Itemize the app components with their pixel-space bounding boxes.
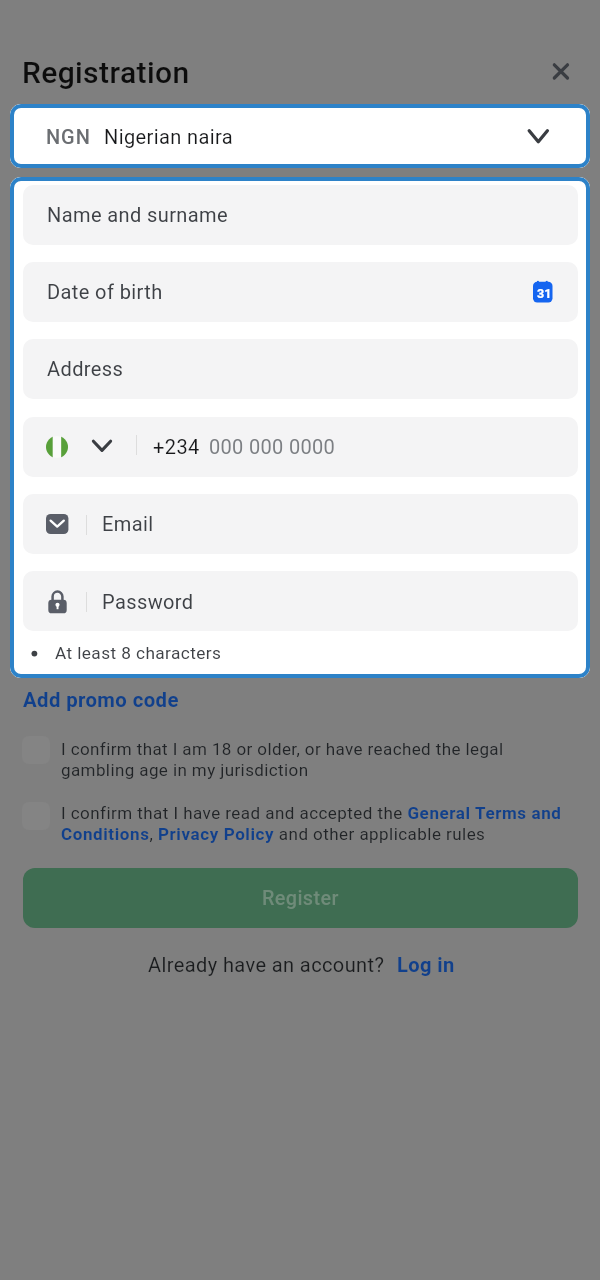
staticText: NGN — [46, 125, 91, 148]
button[interactable]: Add promo code — [23, 688, 179, 712]
button[interactable]: Currency: NGN Nigerian naira — [10, 104, 590, 168]
staticText: Log in — [397, 953, 455, 977]
button[interactable]: Name and surname — [23, 185, 578, 245]
staticText: +234 — [153, 435, 200, 458]
staticText: Nigerian naira — [104, 125, 234, 148]
staticText: 000 — [209, 435, 244, 458]
staticText: I confirm that I am 18 or older, or have… — [61, 739, 504, 759]
staticText: 000 — [249, 435, 284, 458]
button[interactable]: Register — [23, 868, 578, 928]
button[interactable]: Password — [23, 571, 578, 631]
button[interactable]: Pick date — [533, 280, 553, 303]
staticText: 0000 — [289, 435, 335, 458]
staticText: Conditions, Privacy Policy and other app… — [61, 824, 486, 844]
button[interactable]: Phone number — [23, 417, 578, 477]
staticText: I confirm that I have read and accepted … — [61, 803, 562, 823]
button[interactable]: Email — [23, 494, 578, 554]
staticText: Email — [102, 512, 154, 535]
button[interactable]: Select country code — [36, 427, 124, 467]
button[interactable]: Address — [23, 339, 578, 399]
staticText: Register — [262, 887, 339, 910]
staticText: Registration — [22, 55, 190, 90]
button[interactable]: Log in — [397, 953, 455, 977]
button[interactable]: Date of birth — [23, 262, 578, 322]
staticText: At least 8 characters — [55, 643, 222, 663]
staticText: Address — [47, 357, 124, 380]
staticText: Already have an account? — [148, 953, 385, 976]
staticText: Add promo code — [23, 688, 179, 712]
button[interactable]: Close — [540, 51, 582, 93]
staticText: Name and surname — [47, 203, 229, 226]
staticText: Password — [102, 590, 194, 613]
staticText: 31 — [537, 286, 552, 301]
staticText: gambling age in my jurisdiction — [61, 760, 309, 780]
staticText: Date of birth — [47, 280, 163, 303]
